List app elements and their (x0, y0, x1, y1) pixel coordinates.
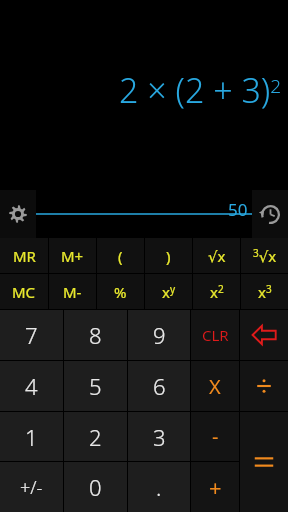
staticText: 1 (25, 422, 38, 452)
staticText: MR (13, 246, 36, 266)
button[interactable]: M- (49, 274, 96, 309)
button[interactable]: % (97, 274, 144, 309)
staticText: - (212, 423, 219, 450)
button[interactable]: MR (0, 238, 48, 273)
button[interactable]: M+ (49, 238, 96, 273)
button[interactable]: 0 (64, 462, 127, 512)
button[interactable]: Settings (0, 190, 36, 238)
button[interactable]: CLR (191, 310, 239, 360)
button[interactable]: 3√x (241, 238, 288, 273)
button[interactable]: 6 (128, 361, 190, 411)
button[interactable]: √x (193, 238, 240, 273)
staticText: ) (166, 246, 171, 266)
staticText: 0 (89, 472, 102, 502)
staticText: M+ (61, 246, 84, 266)
staticText: 2 (89, 422, 102, 452)
staticText: 4 (25, 371, 38, 401)
button[interactable]: 50 (36, 190, 252, 238)
staticText: 5 (89, 371, 102, 401)
button[interactable]: . (128, 462, 190, 512)
button[interactable]: MC (0, 274, 48, 309)
button[interactable]: 9 (128, 310, 190, 360)
button[interactable]: Equals (240, 412, 288, 512)
button[interactable]: xy (145, 274, 192, 309)
button[interactable]: x3 (241, 274, 288, 309)
button[interactable]: + (191, 462, 239, 512)
staticText: 50 (228, 198, 248, 221)
button[interactable]: Backspace (240, 310, 288, 360)
staticText: 7 (25, 320, 38, 350)
button[interactable]: History (252, 190, 288, 238)
staticText: ( (118, 246, 123, 266)
button[interactable]: 5 (64, 361, 127, 411)
staticText: 2 × (2 + 3)2 (119, 67, 282, 113)
staticText: + (209, 472, 222, 502)
button[interactable]: - (191, 412, 239, 461)
staticText: 8 (89, 320, 102, 350)
staticText: xy (162, 282, 176, 302)
staticText: 3√x (253, 246, 277, 266)
button[interactable]: 1 (0, 412, 63, 461)
staticText: CLR (202, 325, 229, 345)
staticText: % (114, 282, 127, 302)
staticText: √x (208, 246, 226, 266)
staticText: +/- (20, 475, 43, 500)
staticText: M- (63, 282, 82, 302)
button[interactable]: 7 (0, 310, 63, 360)
button[interactable]: x2 (193, 274, 240, 309)
button[interactable]: Divide (240, 361, 288, 411)
staticText: MC (12, 282, 36, 302)
staticText: X (209, 373, 221, 400)
staticText: x3 (258, 282, 272, 302)
button[interactable]: 8 (64, 310, 127, 360)
staticText: 6 (153, 371, 166, 401)
button[interactable]: X (191, 361, 239, 411)
button[interactable]: 2 (64, 412, 127, 461)
staticText: . (156, 472, 162, 502)
staticText: 3 (153, 422, 166, 452)
staticText: 9 (153, 320, 166, 350)
button[interactable]: +/- (0, 462, 63, 512)
button[interactable]: ( (97, 238, 144, 273)
button[interactable]: 4 (0, 361, 63, 411)
button[interactable]: 3 (128, 412, 190, 461)
staticText: x2 (210, 282, 224, 302)
button[interactable]: ) (145, 238, 192, 273)
